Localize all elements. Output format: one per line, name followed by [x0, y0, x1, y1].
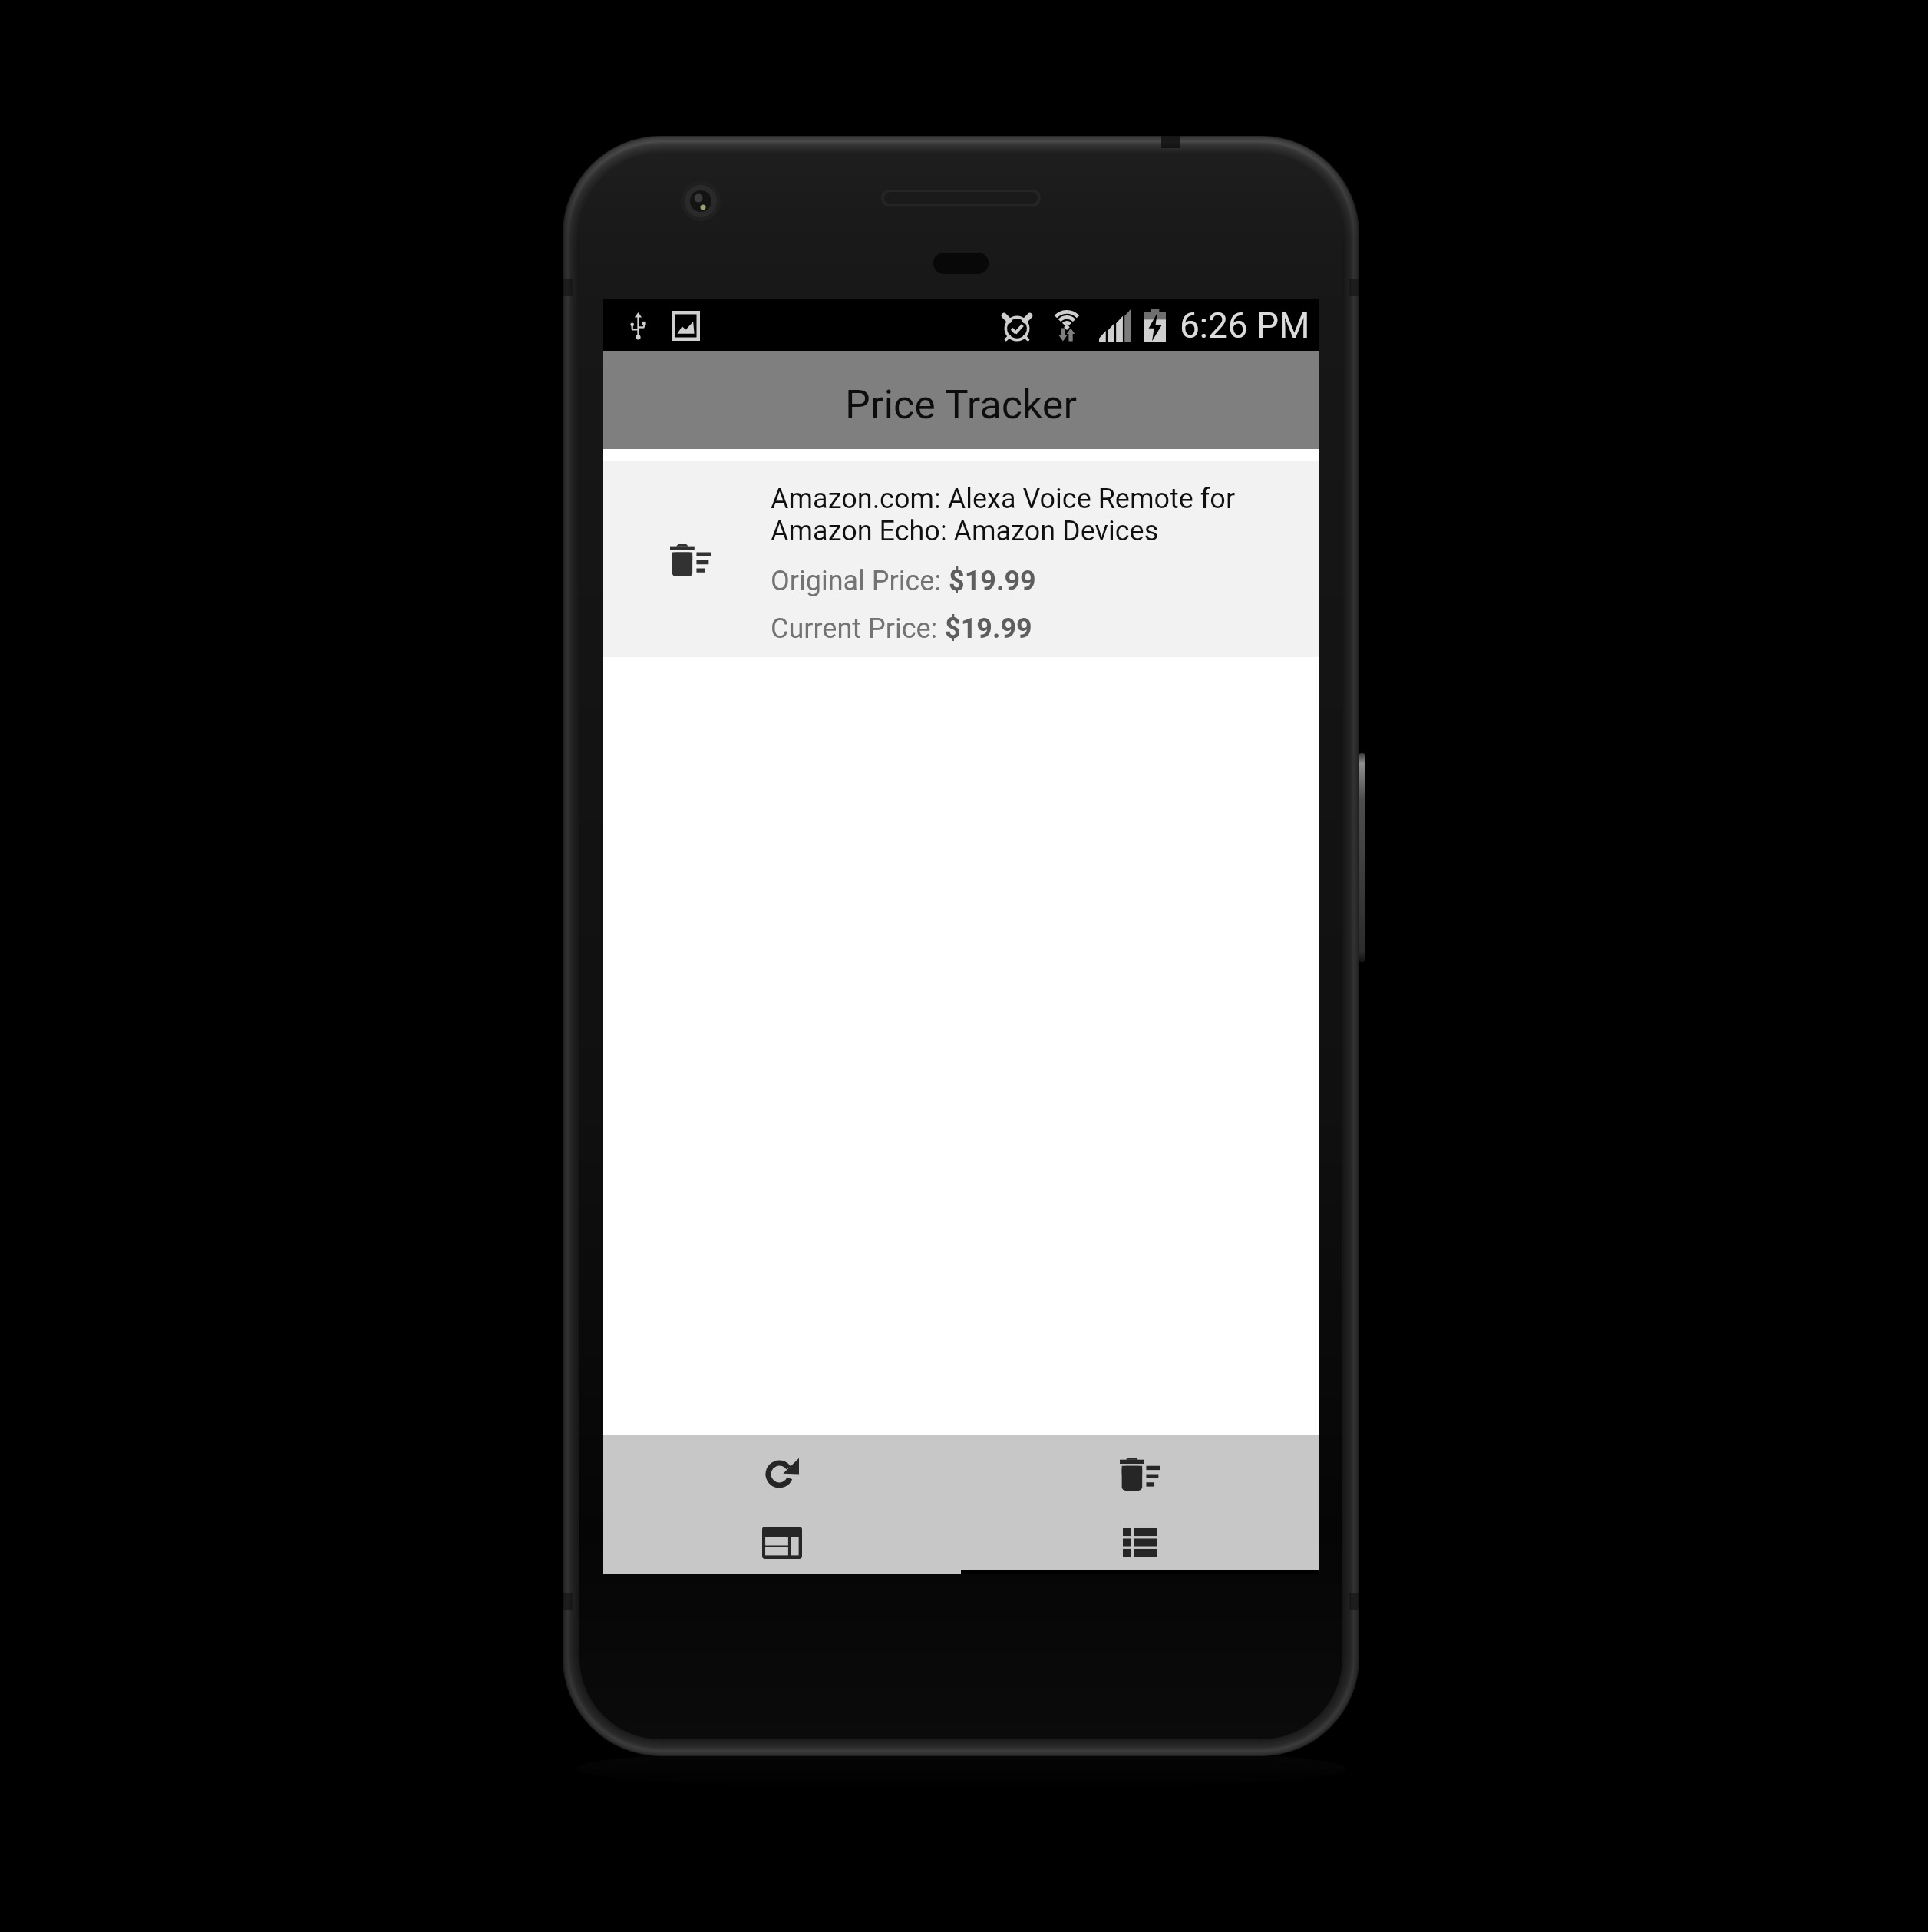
staticText: $19.99	[945, 613, 1032, 645]
staticText: 6:26 PM	[1180, 305, 1310, 346]
staticText: Original Price:	[771, 565, 949, 597]
staticText: Amazon.com: Alexa Voice Remote for Amazo…	[771, 483, 1311, 547]
staticText: Current Price:	[771, 613, 945, 645]
staticText: $19.99	[949, 565, 1036, 597]
button[interactable]: Open web view	[603, 1508, 961, 1574]
button[interactable]: Delete all items	[961, 1439, 1319, 1508]
staticText: Price Tracker	[845, 381, 1078, 428]
button[interactable]: Amazon.com: Alexa Voice Remote for Amazo…	[603, 461, 1319, 657]
button[interactable]: Refresh prices	[603, 1439, 961, 1508]
button[interactable]: Open list view	[961, 1508, 1319, 1574]
